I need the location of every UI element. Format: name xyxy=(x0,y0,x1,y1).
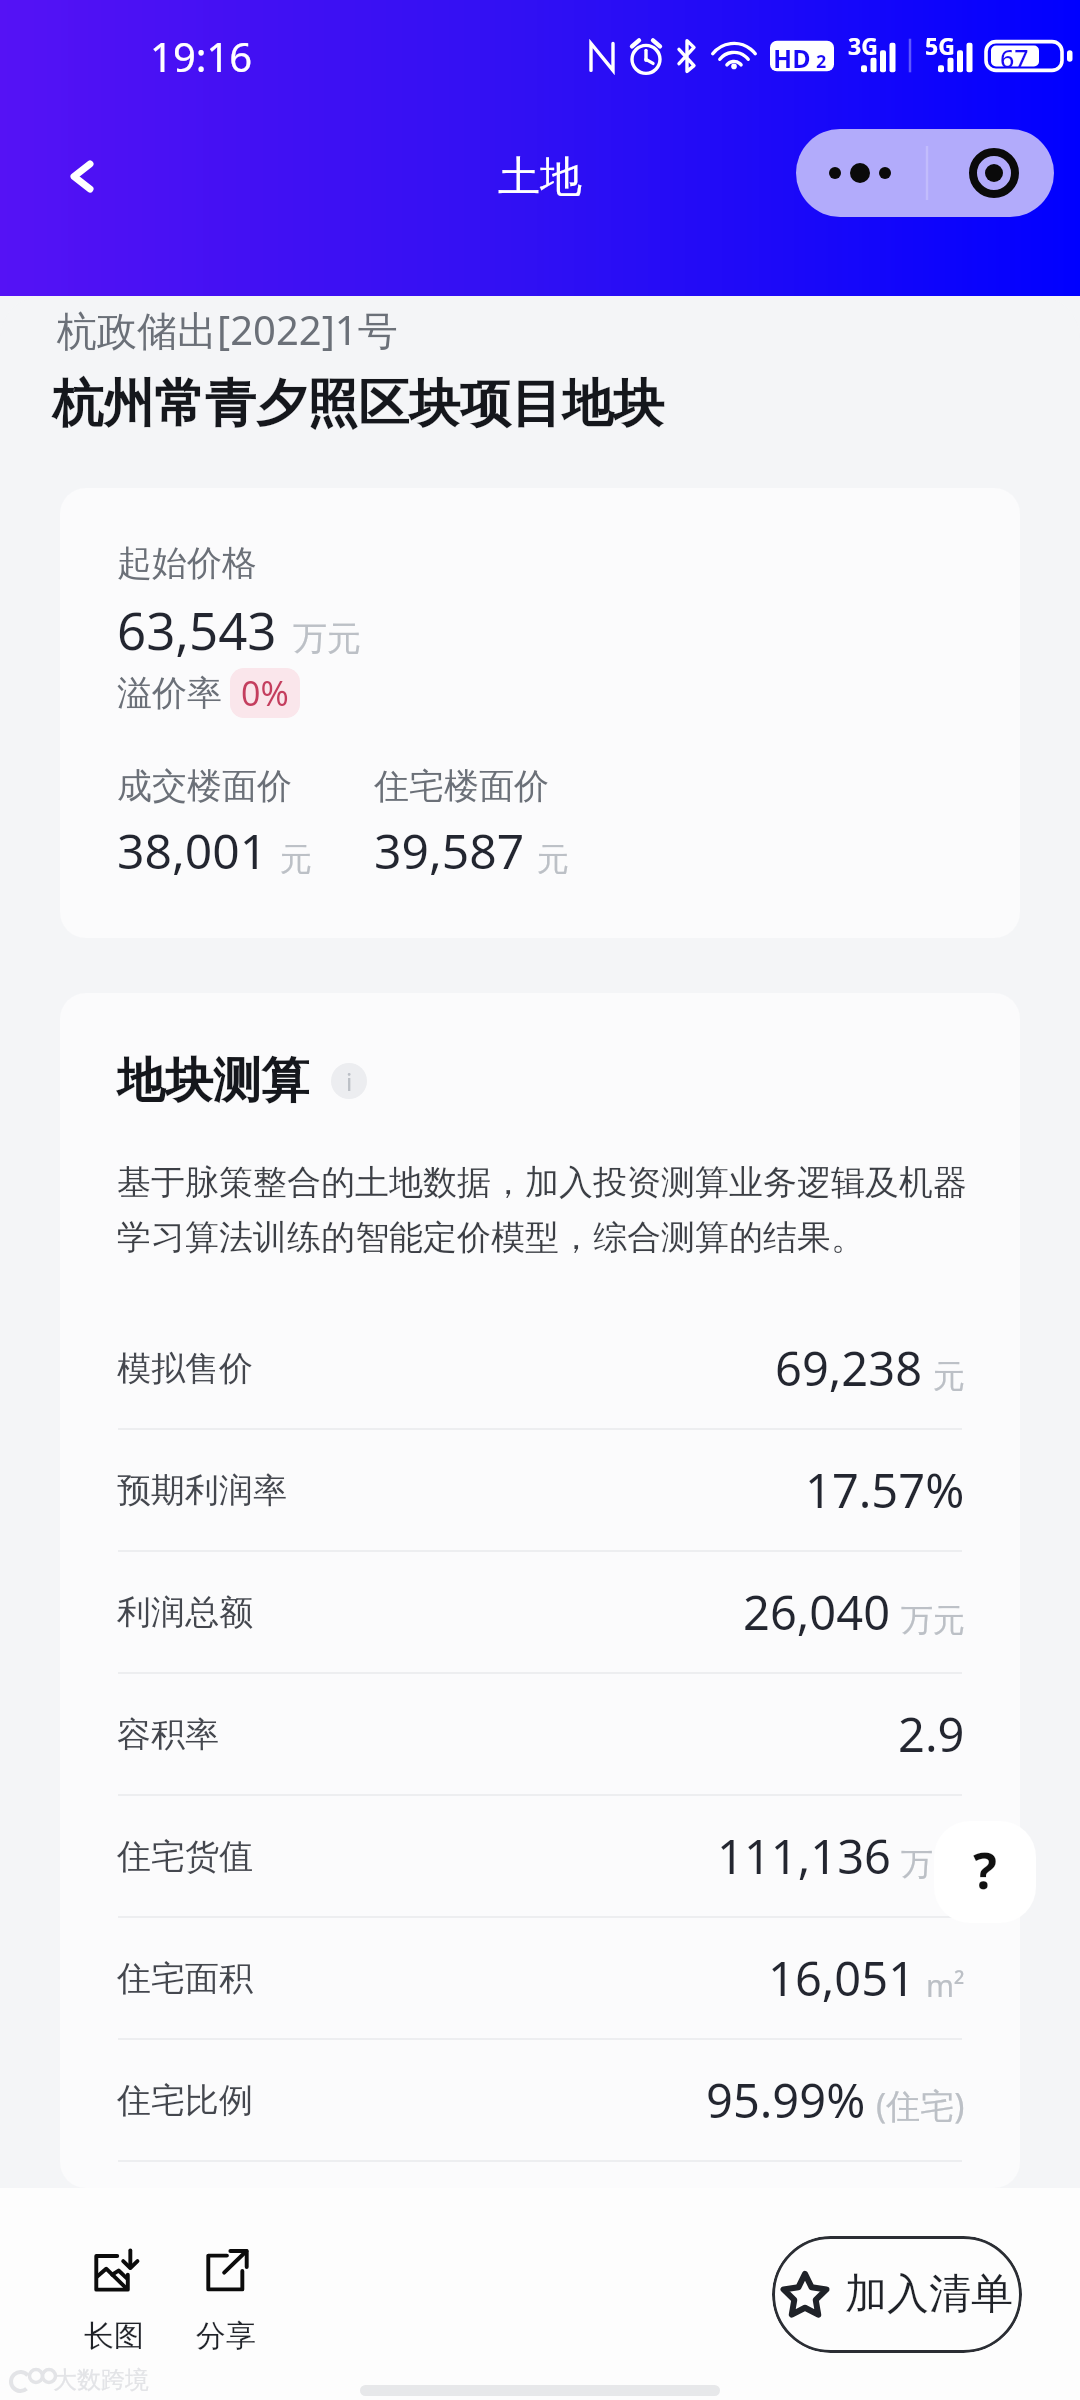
button[interactable]: 利润总额 xyxy=(117,1552,965,1672)
staticText: 元 xyxy=(280,839,312,879)
staticText: 住宅面积 xyxy=(117,1957,253,2000)
staticText: 大数跨境 xyxy=(53,2365,149,2395)
staticText: 杭政储出[2022]1号 xyxy=(57,302,398,357)
staticText: 5G xyxy=(925,30,955,61)
button[interactable]: Info xyxy=(331,1063,367,1099)
staticText: 容积率 xyxy=(117,1713,219,1756)
button[interactable]: 加入清单 xyxy=(772,2236,1022,2353)
staticText: 26,040 xyxy=(743,1580,891,1644)
staticText: 38,001 xyxy=(117,818,268,883)
staticText: 分享 xyxy=(196,2317,256,2355)
staticText: 19:16 xyxy=(150,29,253,83)
button[interactable]: 模拟售价 xyxy=(117,1308,965,1428)
staticText: 地块测算 xyxy=(117,1051,309,1111)
staticText: 元 xyxy=(933,1356,965,1396)
button[interactable]: Back xyxy=(40,134,124,218)
button[interactable]: Help xyxy=(934,1821,1036,1923)
button[interactable]: 住宅货值 xyxy=(117,1796,965,1916)
staticText: 模拟售价 xyxy=(117,1347,253,1390)
staticText: 长图 xyxy=(84,2317,144,2355)
staticText: 2 xyxy=(816,49,827,74)
staticText: 39,587 xyxy=(374,818,525,883)
staticText: 万元 xyxy=(901,1600,965,1640)
staticText: 预期利润率 xyxy=(117,1469,287,1512)
staticText: 万元 xyxy=(293,617,361,660)
button[interactable]: 住宅面积 xyxy=(117,1918,965,2038)
staticText: 利润总额 xyxy=(117,1591,253,1634)
button[interactable]: 长图 xyxy=(64,2248,164,2355)
staticText: 2.9 xyxy=(898,1702,965,1766)
staticText: 溢价率 xyxy=(117,671,222,715)
staticText: 万元 xyxy=(901,1844,965,1884)
staticText: 95.99% xyxy=(706,2068,866,2132)
button[interactable]: 预期利润率 xyxy=(117,1430,965,1550)
button[interactable]: Mini program menu xyxy=(796,129,1054,217)
staticText: 元 xyxy=(537,839,569,879)
button[interactable]: 分享 xyxy=(176,2248,276,2355)
staticText: 住宅比例 xyxy=(117,2079,253,2122)
staticText: 成交楼面价 xyxy=(117,764,292,808)
staticText: ? xyxy=(973,1836,997,1904)
staticText: i xyxy=(346,1065,353,1098)
staticText: 起始价格 xyxy=(117,541,257,585)
staticText: (住宅) xyxy=(876,2082,965,2128)
staticText: m² xyxy=(926,1965,965,2006)
staticText: 3G xyxy=(848,30,878,61)
staticText: 69,238 xyxy=(775,1336,923,1400)
staticText: HD xyxy=(773,41,811,75)
button[interactable]: 容积率 xyxy=(117,1674,965,1794)
staticText: 住宅货值 xyxy=(117,1835,253,1878)
staticText: 67 xyxy=(1000,41,1029,75)
staticText: 基于脉策整合的土地数据，加入投资测算业务逻辑及机器 学习算法训练的智能定价模型，… xyxy=(117,1161,967,1259)
staticText: 0% xyxy=(241,670,289,716)
staticText: 17.57% xyxy=(805,1458,965,1522)
staticText: 土地 xyxy=(498,151,582,204)
staticText: 63,543 xyxy=(117,595,277,664)
staticText: 住宅楼面价 xyxy=(374,764,549,808)
staticText: 杭州常青夕照区块项目地块 xyxy=(52,372,664,436)
staticText: 16,051 xyxy=(768,1946,916,2010)
button[interactable]: 住宅比例 xyxy=(117,2040,965,2160)
staticText: 加入清单 xyxy=(845,2268,1013,2321)
staticText: 111,136 xyxy=(717,1824,891,1888)
